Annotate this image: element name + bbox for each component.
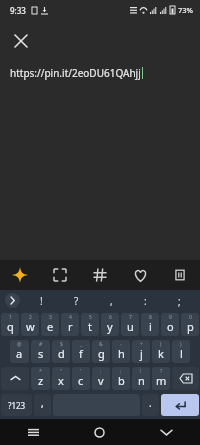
button[interactable]: ) (172, 340, 190, 363)
button[interactable]: ; (112, 367, 130, 390)
staticText: w (26, 319, 35, 334)
staticText: a (16, 346, 23, 361)
button[interactable]: Delete (160, 260, 200, 290)
staticText: 7 (129, 314, 132, 321)
button[interactable]: Hashtag (80, 260, 120, 290)
staticText: : (144, 294, 147, 308)
staticText: 3 (49, 314, 52, 321)
staticText: l (180, 346, 183, 361)
staticText: 5 (89, 314, 92, 321)
button[interactable]: ? (152, 367, 170, 390)
staticText: d (58, 346, 65, 361)
staticText: p (187, 319, 194, 334)
button[interactable]: Back (133, 419, 200, 445)
staticText: 9:33 (10, 5, 26, 16)
button[interactable]: 9 (161, 313, 179, 336)
button[interactable]: ' (72, 367, 90, 390)
staticText: ?123 (8, 400, 26, 411)
button[interactable]: ?123 (1, 394, 32, 416)
staticText: b (118, 373, 125, 388)
button[interactable]: : (128, 290, 162, 311)
staticText: z (38, 373, 44, 388)
button[interactable]: Home (66, 419, 133, 445)
button[interactable]: + (132, 340, 150, 363)
staticText: u (127, 319, 134, 334)
staticText: g (98, 346, 105, 361)
staticText: ( (160, 341, 162, 348)
button[interactable]: _ (72, 340, 90, 363)
button[interactable]: Shift (1, 367, 29, 390)
staticText: @ (17, 341, 22, 348)
button[interactable]: Recents (0, 419, 66, 445)
staticText: r (68, 319, 73, 334)
staticText: f (79, 346, 83, 361)
staticText: m (156, 373, 167, 388)
button[interactable]: ; (162, 290, 196, 311)
staticText: 4 (69, 314, 72, 321)
staticText: q (7, 319, 14, 334)
button[interactable]: Comma (34, 394, 51, 416)
button[interactable]: 3 (41, 313, 59, 336)
button[interactable]: ? (59, 290, 94, 311)
staticText: : (100, 368, 102, 375)
button[interactable]: ! (24, 290, 59, 311)
staticText: $ (60, 341, 63, 348)
button[interactable]: Magic (0, 260, 40, 290)
staticText: ? (74, 294, 79, 308)
button[interactable]: 7 (121, 313, 139, 336)
staticText: https://pin.it/2eoDU61QAhjj (10, 66, 141, 80)
button[interactable]: , (94, 290, 128, 311)
button[interactable]: Close (6, 26, 36, 56)
staticText: n (138, 373, 145, 388)
button[interactable]: Backspace (172, 367, 199, 390)
button[interactable]: # (31, 340, 50, 363)
button[interactable]: ! (132, 367, 150, 390)
button[interactable]: 6 (101, 313, 119, 336)
staticText: " (60, 368, 63, 375)
button[interactable]: Favorite (120, 260, 160, 290)
button[interactable]: 4 (61, 313, 79, 336)
staticText: y (107, 319, 113, 334)
button[interactable]: 5 (81, 313, 99, 336)
button[interactable]: " (52, 367, 70, 390)
button[interactable]: Enter (161, 394, 199, 416)
button[interactable]: Period (142, 394, 159, 416)
staticText: ; (178, 294, 181, 308)
staticText: 73% (178, 5, 193, 15)
staticText: v (98, 373, 104, 388)
button[interactable]: More (5, 293, 20, 308)
staticText: ! (140, 368, 142, 375)
button[interactable]: 0 (181, 313, 199, 336)
staticText: , (110, 294, 113, 308)
staticText: - (120, 341, 122, 348)
button[interactable]: 2 (21, 313, 39, 336)
staticText: . (149, 396, 152, 410)
staticText: + (140, 341, 143, 348)
staticText: * (39, 368, 42, 375)
button[interactable]: 8 (141, 313, 159, 336)
staticText: o (167, 319, 174, 334)
staticText: i (149, 319, 152, 334)
staticText: ' (80, 368, 82, 375)
staticText: ) (180, 341, 182, 348)
button[interactable]: ( (152, 340, 170, 363)
button[interactable]: $ (52, 340, 70, 363)
button[interactable]: @ (10, 340, 29, 363)
staticText: , (41, 396, 44, 410)
button[interactable]: 1 (1, 313, 19, 336)
button[interactable]: & (92, 340, 110, 363)
staticText: ! (40, 294, 43, 308)
staticText: # (39, 341, 43, 348)
staticText: e (47, 319, 54, 334)
staticText: 6 (109, 314, 112, 321)
button[interactable]: : (92, 367, 110, 390)
staticText: _ (80, 341, 83, 348)
staticText: 8 (149, 314, 152, 321)
staticText: k (158, 346, 164, 361)
staticText: s (38, 346, 44, 361)
button[interactable]: * (31, 367, 50, 390)
button[interactable]: Expand (40, 260, 80, 290)
staticText: h (118, 346, 125, 361)
button[interactable]: - (112, 340, 130, 363)
